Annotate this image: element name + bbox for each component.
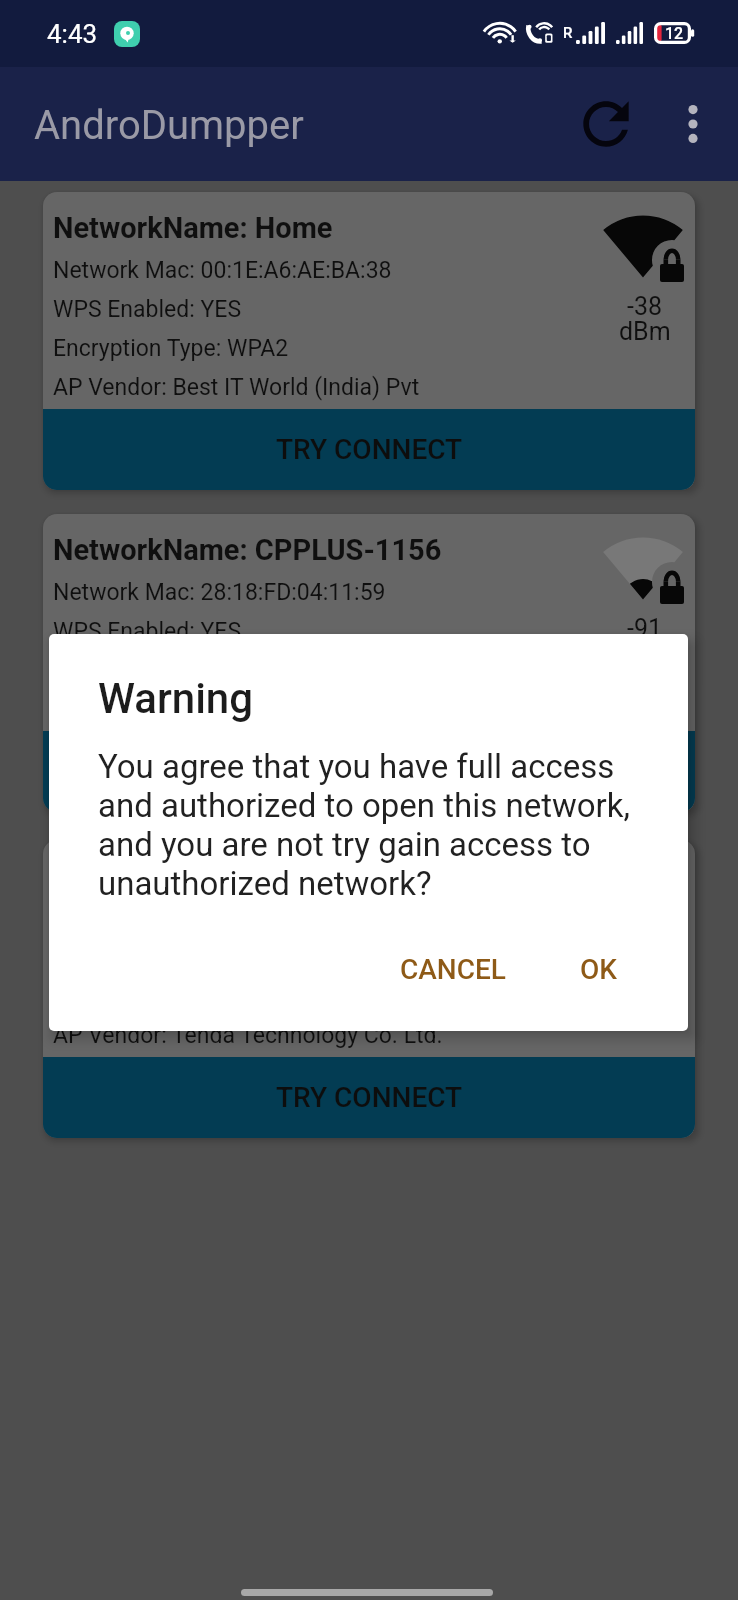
staticText: AP Vendor: CP PLUS [53, 696, 263, 723]
staticText: Warning [98, 674, 254, 723]
staticText: Network Mac: 00:1E:A6:AE:BA:38 [53, 257, 392, 284]
button[interactable]: Refresh [570, 88, 642, 160]
button[interactable]: OK [546, 930, 650, 1008]
staticText: -38 [627, 292, 663, 321]
staticText: OK [580, 953, 617, 986]
button[interactable]: TRY CONNECT [43, 731, 695, 812]
staticText: NetworkName: CPPLUS-1156 [53, 533, 442, 567]
staticText: dBm [619, 317, 671, 346]
staticText: AP Vendor: Best IT World (India) Pvt [53, 374, 420, 401]
staticText: NetworkName: Home [53, 211, 333, 245]
staticText: NetworkName: Tenda_2.4G [53, 859, 409, 893]
staticText: TRY CONNECT [276, 433, 463, 466]
staticText: 12 [665, 24, 684, 43]
button[interactable]: TRY CONNECT [43, 409, 695, 490]
staticText: WPS Enabled: YES [53, 618, 242, 645]
staticText: AndroDumpper [34, 102, 304, 149]
button[interactable]: NetworkName: Home [43, 192, 695, 490]
staticText: -91 [627, 614, 663, 643]
button[interactable]: NetworkName: CPPLUS-1156 [43, 514, 695, 812]
staticText: Encryption Type: WPA2 [53, 335, 289, 362]
button[interactable]: More options [662, 93, 724, 155]
staticText: CANCEL [400, 953, 506, 986]
staticText: 4:43 [47, 19, 98, 49]
staticText: Encryption Type: WPA2 [53, 657, 289, 684]
staticText: WPS Enabled: YES [53, 296, 242, 323]
staticText: You agree that you have full access and … [98, 747, 654, 903]
button[interactable]: CANCEL [369, 930, 537, 1008]
staticText: R [563, 24, 573, 42]
staticText: AP Vendor: Tenda Technology Co. Ltd. [53, 1022, 443, 1049]
staticText: TRY CONNECT [276, 1081, 463, 1114]
button[interactable]: TRY CONNECT [43, 1057, 695, 1138]
staticText: Network Mac: 28:18:FD:04:11:59 [53, 579, 386, 606]
staticText: TRY CONNECT [276, 755, 463, 788]
button[interactable]: NetworkName: Tenda_2.4G [43, 840, 695, 1138]
